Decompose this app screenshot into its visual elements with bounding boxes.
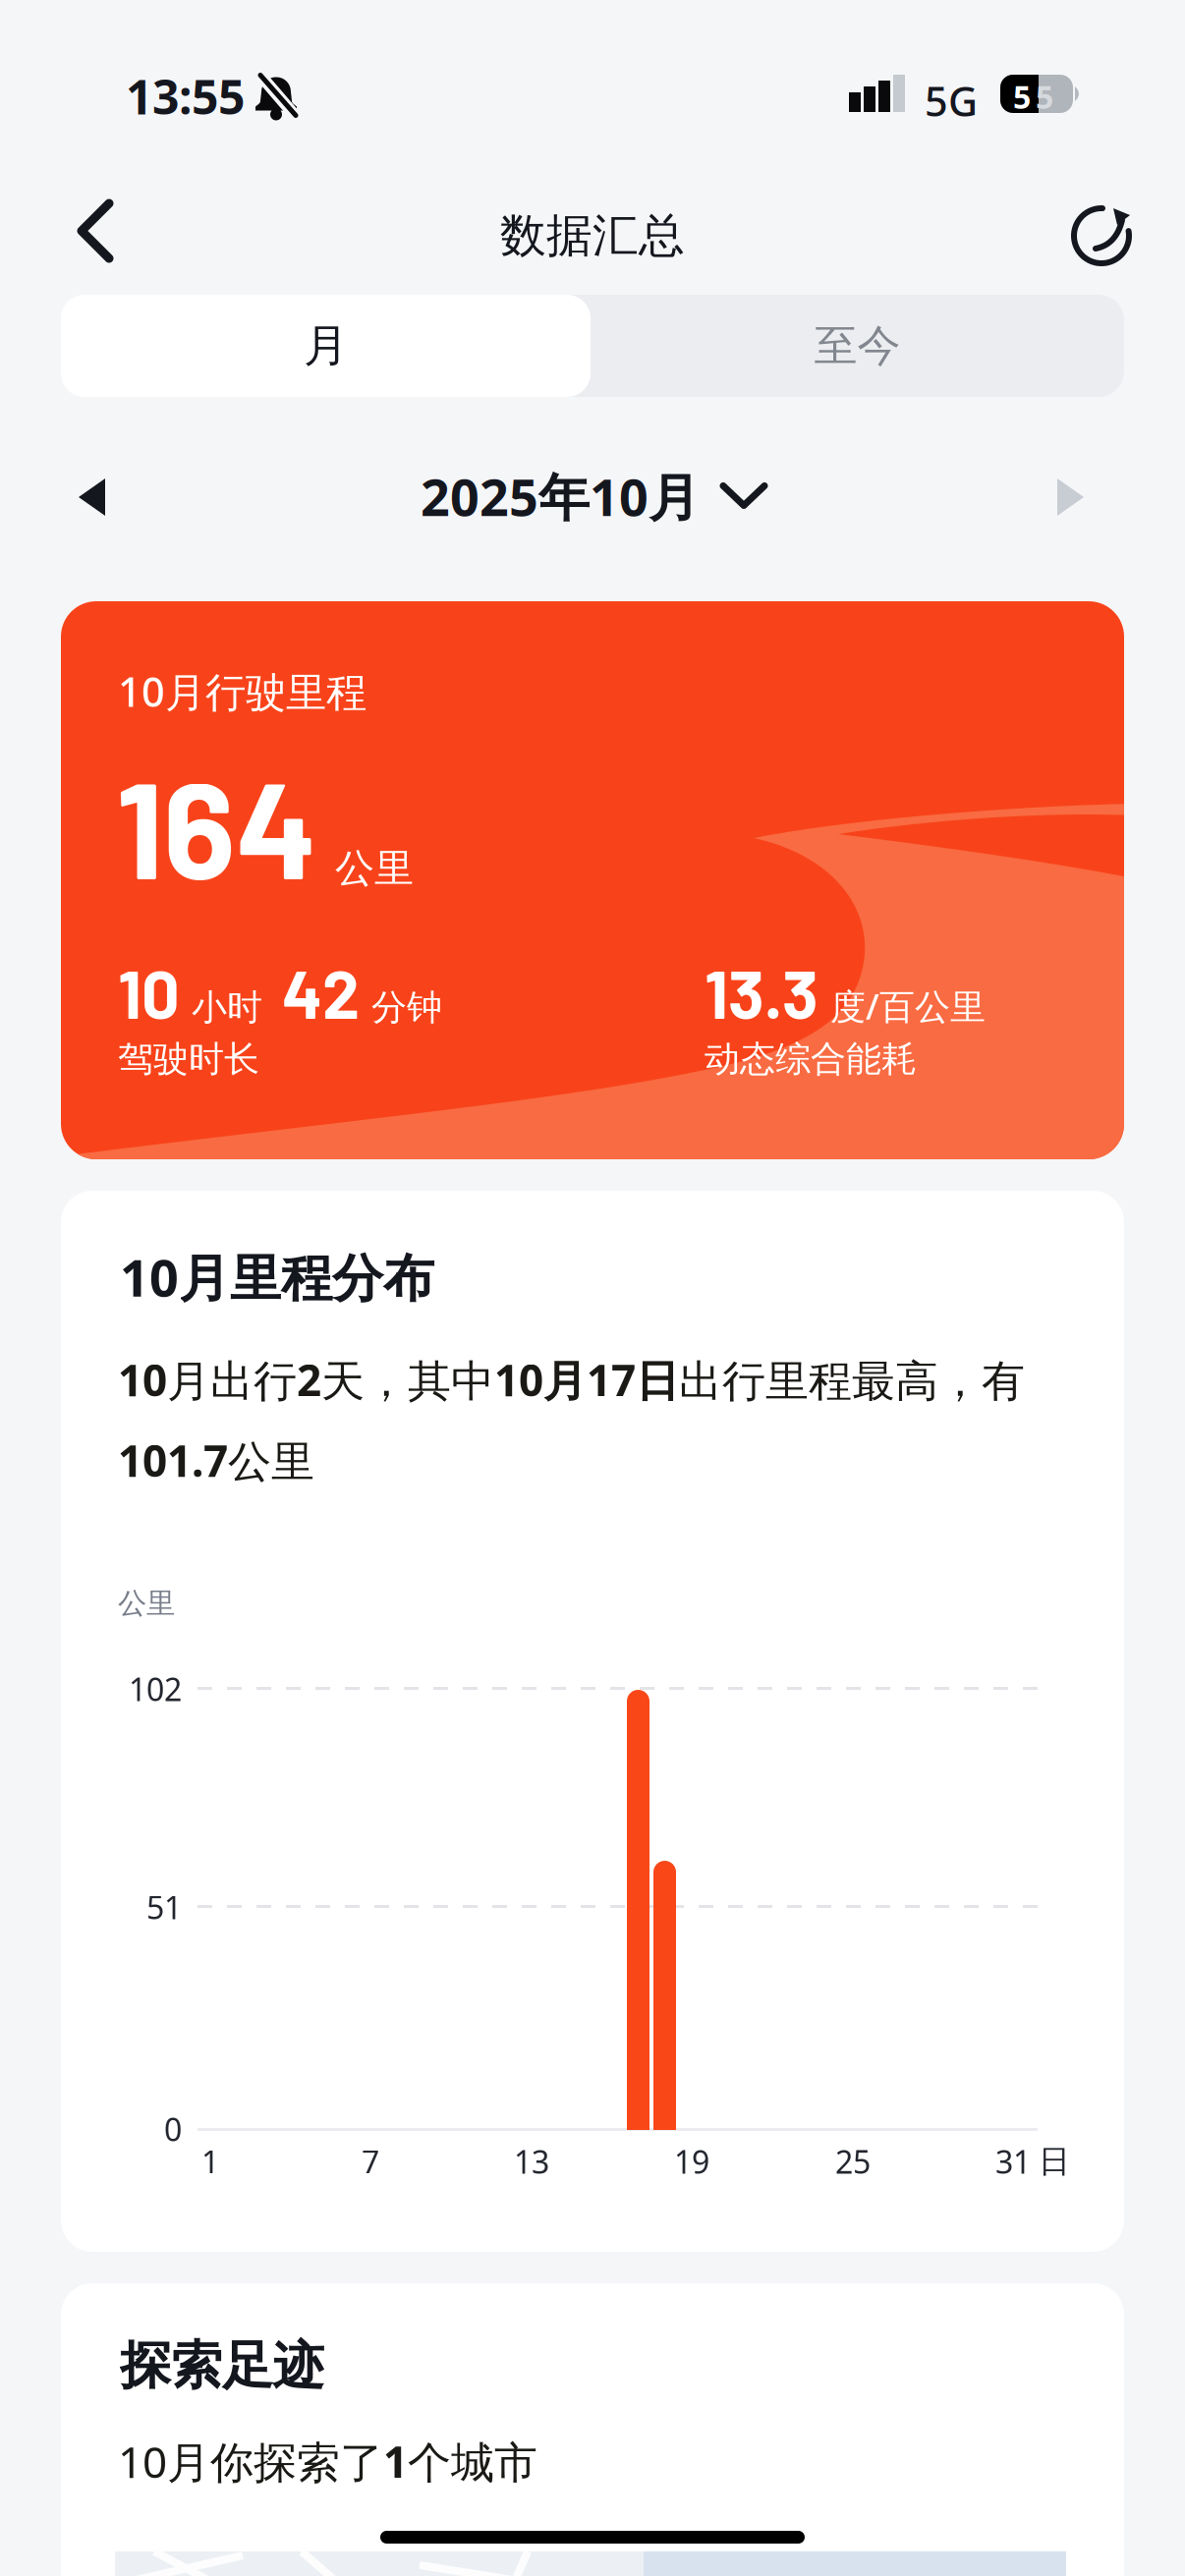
staticText: 驾驶时长 xyxy=(118,1037,259,1081)
staticText: 13 xyxy=(514,2141,549,2182)
staticText: 13.3 xyxy=(705,952,818,1032)
staticText: 5 xyxy=(1036,76,1053,117)
staticText: 至今 xyxy=(814,319,901,372)
staticText: 164 xyxy=(116,745,317,906)
staticText: 51 xyxy=(146,1886,182,1928)
staticText: 13:55 xyxy=(126,65,245,128)
staticText: 10月出行2天，其中10月17日出行里程最高，有 xyxy=(118,1351,1025,1408)
staticText: 19 xyxy=(674,2141,709,2182)
staticText: 动态综合能耗 xyxy=(705,1037,917,1081)
button[interactable]: 至今 xyxy=(591,295,1124,397)
staticText: 5 xyxy=(1013,76,1031,117)
staticText: 0 xyxy=(164,2108,182,2150)
staticText: 2025年10月 xyxy=(421,462,700,530)
staticText: 25 xyxy=(835,2141,871,2182)
staticText: 10月行驶里程 xyxy=(118,664,367,718)
staticText: 小时 xyxy=(192,986,262,1029)
staticText: 10 xyxy=(118,952,180,1032)
button[interactable]: 月 xyxy=(61,295,591,397)
staticText: 分钟 xyxy=(371,986,442,1029)
button[interactable]: Back xyxy=(65,187,128,275)
staticText: 探索足迹 xyxy=(120,2334,324,2397)
staticText: 7 xyxy=(362,2141,379,2182)
staticText: 101.7公里 xyxy=(118,1431,314,1489)
button[interactable]: 2025年10月 xyxy=(421,462,764,530)
staticText: 公里 xyxy=(335,844,414,892)
staticText: 5G xyxy=(925,74,978,128)
staticText: 42 xyxy=(282,952,360,1032)
staticText: 102 xyxy=(129,1668,182,1710)
staticText: 度/百公里 xyxy=(830,982,986,1029)
button[interactable]: Previous month xyxy=(63,463,121,532)
staticText: 1 xyxy=(201,2141,219,2182)
staticText: 日 xyxy=(1039,2142,1070,2181)
staticText: 月 xyxy=(304,319,348,373)
staticText: 10月里程分布 xyxy=(120,1243,434,1311)
staticText: 31 xyxy=(995,2141,1031,2182)
button[interactable]: Next month xyxy=(1042,463,1100,532)
staticText: 公里 xyxy=(118,1586,175,1621)
staticText: 10月你探索了1个城市 xyxy=(118,2433,537,2490)
button[interactable]: Refresh xyxy=(1061,192,1148,278)
staticText: 数据汇总 xyxy=(500,208,685,264)
